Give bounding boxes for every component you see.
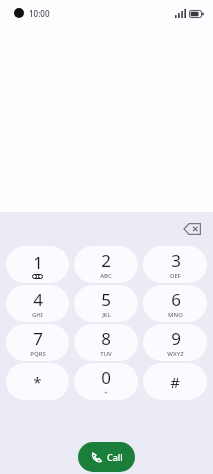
button[interactable]: Backspace <box>179 216 205 242</box>
staticText: 6 <box>171 288 181 311</box>
button[interactable]: 0 <box>74 363 138 400</box>
button[interactable]: 3 <box>143 246 207 283</box>
staticText: 7 <box>33 327 43 350</box>
staticText: 4 <box>33 288 43 311</box>
staticText: * <box>33 372 42 392</box>
staticText: Call <box>107 451 123 463</box>
button[interactable]: 5 <box>74 285 138 322</box>
staticText: 0 <box>101 366 111 389</box>
staticText: TUV <box>100 350 112 358</box>
staticText: GHI <box>32 311 43 319</box>
staticText: 2 <box>101 249 111 272</box>
staticText: # <box>170 372 180 392</box>
button[interactable]: 8 <box>74 324 138 361</box>
staticText: JKL <box>102 311 111 319</box>
button[interactable]: 4 <box>6 285 69 322</box>
staticText: 8 <box>101 327 111 350</box>
button[interactable]: * <box>6 363 69 400</box>
button[interactable]: 1 <box>6 246 69 283</box>
button[interactable]: 7 <box>6 324 69 361</box>
button[interactable]: # <box>143 363 207 400</box>
staticText: MNO <box>168 311 183 319</box>
staticText: 9 <box>171 327 181 350</box>
staticText: + <box>104 389 108 397</box>
staticText: DEF <box>170 272 181 280</box>
button[interactable]: 2 <box>74 246 138 283</box>
staticText: ABC <box>100 272 112 280</box>
staticText: 1 <box>33 251 43 274</box>
button[interactable]: 9 <box>143 324 207 361</box>
staticText: PQRS <box>30 350 46 358</box>
staticText: 3 <box>171 249 181 272</box>
staticText: WXYZ <box>167 350 184 358</box>
button[interactable]: 6 <box>143 285 207 322</box>
staticText: 5 <box>101 288 111 311</box>
staticText: 10:00 <box>29 8 50 19</box>
button[interactable]: Call <box>78 442 135 472</box>
